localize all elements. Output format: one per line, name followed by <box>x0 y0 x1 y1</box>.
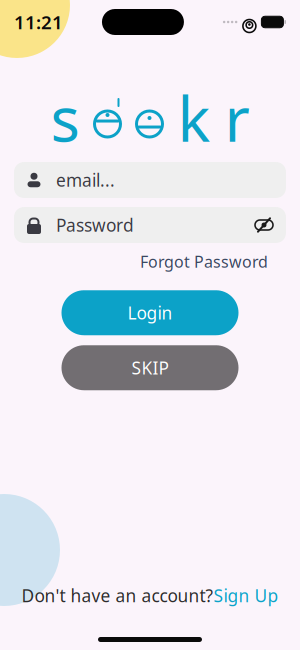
staticText: s <box>50 77 79 159</box>
staticText: k <box>177 77 210 159</box>
staticText: Password <box>56 213 134 236</box>
button[interactable]: email... <box>14 162 286 198</box>
button[interactable]: Password <box>26 213 254 236</box>
staticText: 11:21 <box>14 10 63 34</box>
button[interactable]: Show password <box>254 216 274 234</box>
button[interactable]: Login <box>61 290 238 335</box>
button[interactable]: SKIP <box>61 345 238 390</box>
button[interactable]: Sign Up <box>213 584 278 607</box>
staticText: Don't have an account? <box>21 584 213 607</box>
staticText: r <box>224 77 249 159</box>
staticText: SKIP <box>131 356 168 379</box>
staticText: email... <box>56 168 115 191</box>
staticText: Sign Up <box>213 584 278 607</box>
button[interactable]: Forgot Password <box>140 249 268 274</box>
staticText: Login <box>127 301 172 324</box>
staticText: Forgot Password <box>140 251 268 272</box>
